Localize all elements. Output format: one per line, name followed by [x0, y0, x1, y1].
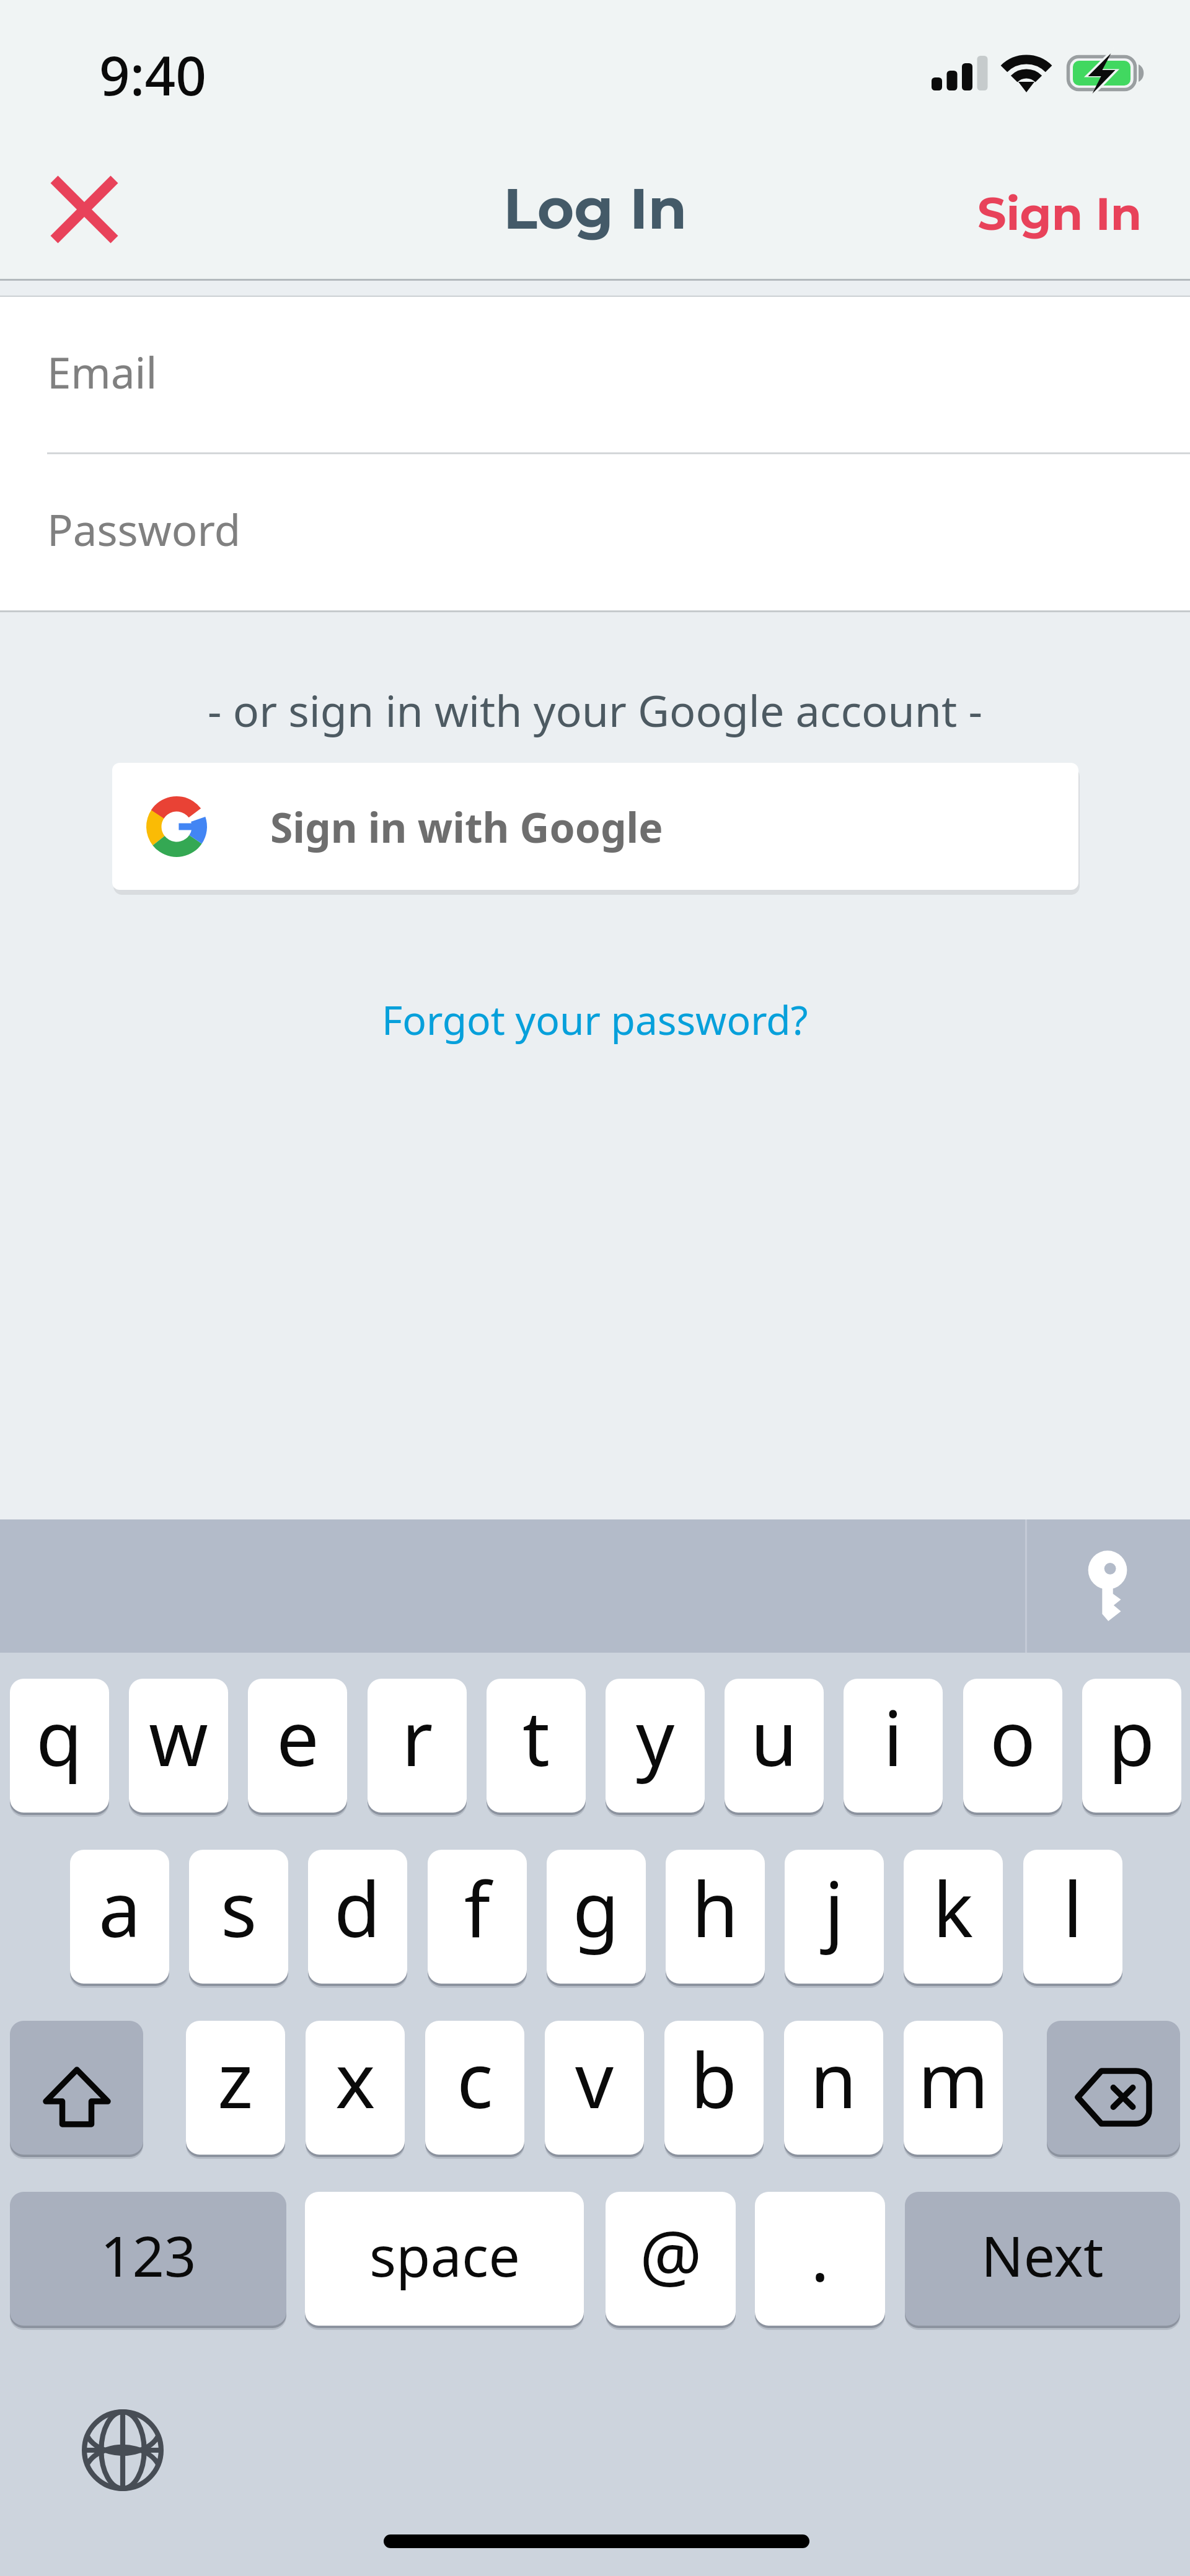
button[interactable]: Next [905, 2192, 1180, 2326]
staticText: v [575, 2028, 614, 2130]
button[interactable]: Forgot your password? [347, 982, 843, 1057]
button[interactable]: Switch keyboard [67, 2394, 178, 2506]
button[interactable]: z [186, 2021, 285, 2155]
button[interactable]: u [725, 1679, 824, 1813]
button[interactable]: a [70, 1850, 169, 1984]
staticText: q [36, 1686, 83, 1788]
button[interactable]: d [308, 1850, 407, 1984]
button[interactable]: Backspace [1047, 2021, 1180, 2155]
button[interactable]: m [904, 2021, 1003, 2155]
staticText: w [149, 1686, 208, 1788]
button[interactable]: r [368, 1679, 467, 1813]
button[interactable]: space [305, 2192, 584, 2326]
button[interactable]: s [189, 1850, 288, 1984]
staticText: t [522, 1686, 550, 1788]
staticText: x [335, 2028, 376, 2130]
staticText: l [1063, 1857, 1083, 1959]
staticText: Sign In [977, 186, 1142, 241]
staticText: b [690, 2028, 738, 2130]
button[interactable]: t [487, 1679, 586, 1813]
staticText: s [221, 1857, 257, 1959]
staticText: y [636, 1686, 675, 1788]
button[interactable]: k [904, 1850, 1003, 1984]
button[interactable]: Close [17, 146, 151, 272]
staticText: d [334, 1857, 381, 1959]
button[interactable]: . [755, 2192, 885, 2326]
staticText: r [402, 1686, 433, 1788]
staticText: k [933, 1857, 974, 1959]
staticText: a [99, 1857, 141, 1959]
staticText: o [990, 1686, 1036, 1788]
button[interactable]: h [666, 1850, 765, 1984]
button[interactable]: Passwords [1057, 1532, 1166, 1638]
button[interactable]: f [428, 1850, 527, 1984]
button[interactable]: Password [0, 454, 1190, 610]
button[interactable]: q [10, 1679, 109, 1813]
staticText: j [824, 1857, 844, 1959]
staticText: Sign in with Google [270, 799, 663, 855]
button[interactable]: o [963, 1679, 1062, 1813]
staticText: Email [47, 343, 157, 401]
button[interactable]: j [785, 1850, 884, 1984]
button[interactable]: l [1023, 1850, 1122, 1984]
button[interactable]: e [248, 1679, 347, 1813]
staticText: m [918, 2028, 989, 2130]
button[interactable]: g [547, 1850, 646, 1984]
staticText: Forgot your password? [382, 993, 808, 1047]
button[interactable]: w [129, 1679, 228, 1813]
staticText: Next [981, 2217, 1104, 2293]
button[interactable]: p [1082, 1679, 1181, 1813]
staticText: space [369, 2217, 520, 2293]
button[interactable]: v [545, 2021, 644, 2155]
button[interactable]: b [664, 2021, 764, 2155]
staticText: 123 [100, 2217, 196, 2293]
staticText: . [811, 2207, 830, 2301]
staticText: u [751, 1686, 798, 1788]
staticText: i [883, 1686, 903, 1788]
button[interactable]: i [844, 1679, 943, 1813]
staticText: f [464, 1857, 490, 1959]
staticText: p [1108, 1686, 1155, 1788]
staticText: Log In [503, 174, 687, 243]
staticText: c [457, 2028, 493, 2130]
staticText: z [218, 2028, 253, 2130]
staticText: Password [47, 500, 241, 558]
staticText: - or sign in with your Google account - [0, 680, 1190, 739]
button[interactable]: n [784, 2021, 883, 2155]
staticText: h [692, 1857, 739, 1959]
button[interactable]: x [306, 2021, 405, 2155]
button[interactable]: Shift [10, 2021, 143, 2155]
button[interactable]: Email [0, 297, 1190, 453]
button[interactable]: Sign In [930, 164, 1190, 263]
staticText: 9:40 [99, 38, 206, 111]
staticText: @ [640, 2207, 702, 2301]
button[interactable]: Sign in with Google [112, 763, 1078, 890]
button[interactable]: y [606, 1679, 705, 1813]
button[interactable]: 123 [10, 2192, 286, 2326]
staticText: g [573, 1857, 620, 1959]
button[interactable]: c [425, 2021, 524, 2155]
staticText: n [810, 2028, 857, 2130]
button[interactable]: @ [606, 2192, 736, 2326]
staticText: e [276, 1686, 319, 1788]
